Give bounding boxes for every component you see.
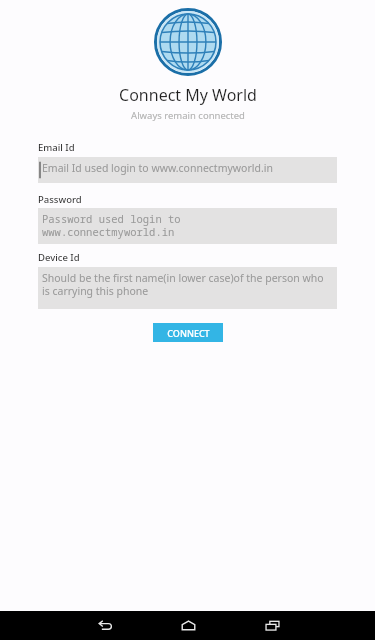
button[interactable]: Back xyxy=(76,611,132,640)
staticText: Password used login to www.connectmyworl… xyxy=(42,212,181,239)
staticText: CONNECT xyxy=(167,327,210,339)
staticText: Device Id xyxy=(38,251,80,264)
button[interactable]: Home xyxy=(160,611,216,640)
button[interactable]: Recent apps xyxy=(244,611,300,640)
button[interactable]: CONNECT xyxy=(153,323,223,342)
staticText: Email Id xyxy=(38,141,75,154)
staticText: Always remain connected xyxy=(131,109,245,122)
staticText: Should be the first name(in lower case)o… xyxy=(42,271,333,298)
button[interactable]: Device Id xyxy=(38,267,337,309)
staticText: Connect My World xyxy=(119,84,257,106)
button[interactable]: Password xyxy=(38,208,337,244)
staticText: Password xyxy=(38,193,82,206)
staticText: Email Id used login to www.connectmyworl… xyxy=(42,161,273,175)
button[interactable]: Email Id xyxy=(38,157,337,183)
